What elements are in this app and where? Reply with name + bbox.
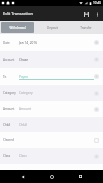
button[interactable]: More options — [92, 9, 102, 19]
button[interactable]: Account — [0, 51, 103, 68]
staticText: Chk# — [19, 123, 27, 127]
staticText: Deposit — [47, 26, 58, 30]
staticText: Category — [3, 91, 19, 95]
staticText: 10:45 — [93, 1, 102, 5]
button[interactable]: Class — [0, 148, 103, 164]
button[interactable]: Chk# — [0, 117, 103, 132]
staticText: Chase — [19, 58, 29, 62]
button[interactable]: Save — [80, 8, 92, 20]
button[interactable]: Transfer — [70, 22, 102, 33]
staticText: Payee — [19, 75, 28, 79]
button[interactable]: Date — [0, 34, 103, 51]
staticText: Chk# — [3, 123, 19, 127]
staticText: Class — [3, 154, 19, 158]
staticText: Cleared — [3, 138, 19, 142]
button[interactable]: Amount — [0, 101, 103, 117]
button[interactable]: Deposit — [36, 22, 68, 33]
button[interactable]: To — [0, 68, 103, 85]
staticText: Jan 14, 2016 — [19, 41, 38, 45]
button[interactable]: Back — [16, 170, 29, 183]
staticText: To — [3, 75, 19, 79]
button[interactable]: Recents — [74, 170, 87, 183]
button[interactable]: Category — [0, 85, 103, 101]
staticText: Amount — [3, 107, 19, 111]
staticText: Amount — [19, 107, 32, 111]
staticText: Date — [3, 41, 19, 45]
staticText: Edit Transaction — [3, 11, 33, 16]
button[interactable]: Home — [45, 170, 58, 183]
staticText: Account — [3, 58, 19, 62]
staticText: Class — [19, 154, 27, 158]
staticText: Category — [19, 91, 33, 95]
button[interactable]: Withdrawal — [1, 22, 34, 33]
staticText: Transfer — [80, 26, 92, 30]
staticText: Withdrawal — [9, 26, 26, 30]
button[interactable]: Cleared — [0, 132, 103, 148]
